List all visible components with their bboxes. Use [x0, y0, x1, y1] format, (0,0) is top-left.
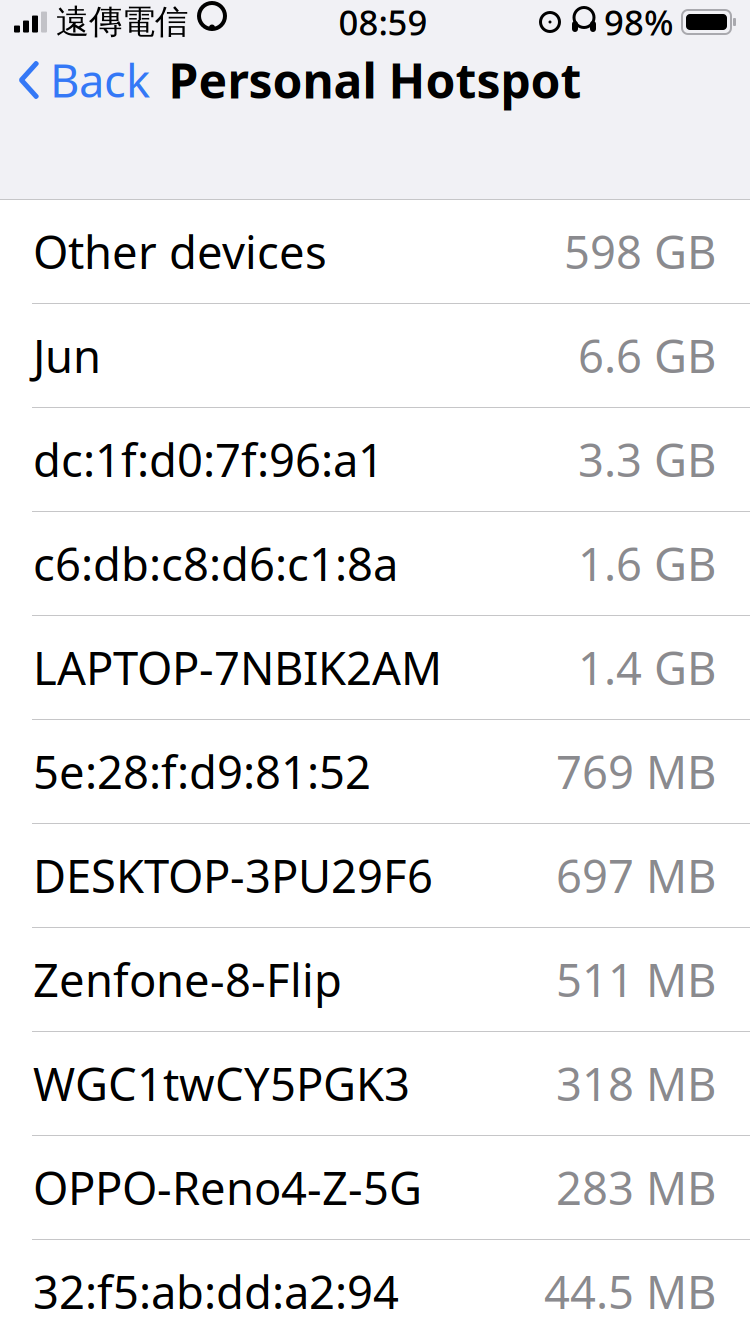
button[interactable]: OPPO-Reno4-Z-5G [0, 1136, 750, 1240]
button[interactable]: 5e:28:f:d9:81:52 [0, 720, 750, 824]
staticText: 08:59 [338, 0, 427, 45]
staticText: 6.6 GB [578, 325, 716, 386]
staticText: Zenfone-8-Flip [33, 949, 342, 1010]
staticText: OPPO-Reno4-Z-5G [33, 1157, 422, 1218]
button[interactable]: 32:f5:ab:dd:a2:94 [0, 1240, 750, 1334]
staticText: 769 MB [556, 741, 716, 802]
staticText: 98% [604, 0, 674, 45]
button[interactable]: dc:1f:d0:7f:96:a1 [0, 408, 750, 512]
button[interactable]: Back [0, 51, 162, 109]
staticText: c6:db:c8:d6:c1:8a [33, 533, 398, 594]
button[interactable]: LAPTOP-7NBIK2AM [0, 616, 750, 720]
staticText: 遠傳電信 [56, 1, 188, 42]
staticText: Jun [33, 325, 101, 386]
button[interactable]: DESKTOP-3PU29F6 [0, 824, 750, 928]
staticText: 3.3 GB [578, 429, 716, 490]
staticText: 1.4 GB [578, 637, 716, 698]
staticText: Personal Hotspot [168, 48, 581, 112]
staticText: 5e:28:f:d9:81:52 [33, 741, 371, 802]
staticText: 44.5 MB [544, 1261, 716, 1322]
staticText: 32:f5:ab:dd:a2:94 [33, 1261, 399, 1322]
staticText: WGC1twCY5PGK3 [33, 1053, 410, 1114]
staticText: dc:1f:d0:7f:96:a1 [33, 429, 384, 490]
button[interactable]: Jun [0, 304, 750, 408]
staticText: 598 GB [564, 221, 716, 282]
button[interactable]: WGC1twCY5PGK3 [0, 1032, 750, 1136]
staticText: 318 MB [556, 1053, 716, 1114]
staticText: Back [50, 50, 150, 110]
staticText: 697 MB [556, 845, 716, 906]
staticText: DESKTOP-3PU29F6 [33, 845, 433, 906]
button[interactable]: Zenfone-8-Flip [0, 928, 750, 1032]
button[interactable]: c6:db:c8:d6:c1:8a [0, 512, 750, 616]
staticText: 511 MB [556, 949, 716, 1010]
button[interactable]: Other devices [0, 200, 750, 304]
staticText: 283 MB [556, 1157, 716, 1218]
staticText: LAPTOP-7NBIK2AM [33, 637, 442, 698]
staticText: Other devices [33, 221, 327, 282]
staticText: 1.6 GB [578, 533, 716, 594]
